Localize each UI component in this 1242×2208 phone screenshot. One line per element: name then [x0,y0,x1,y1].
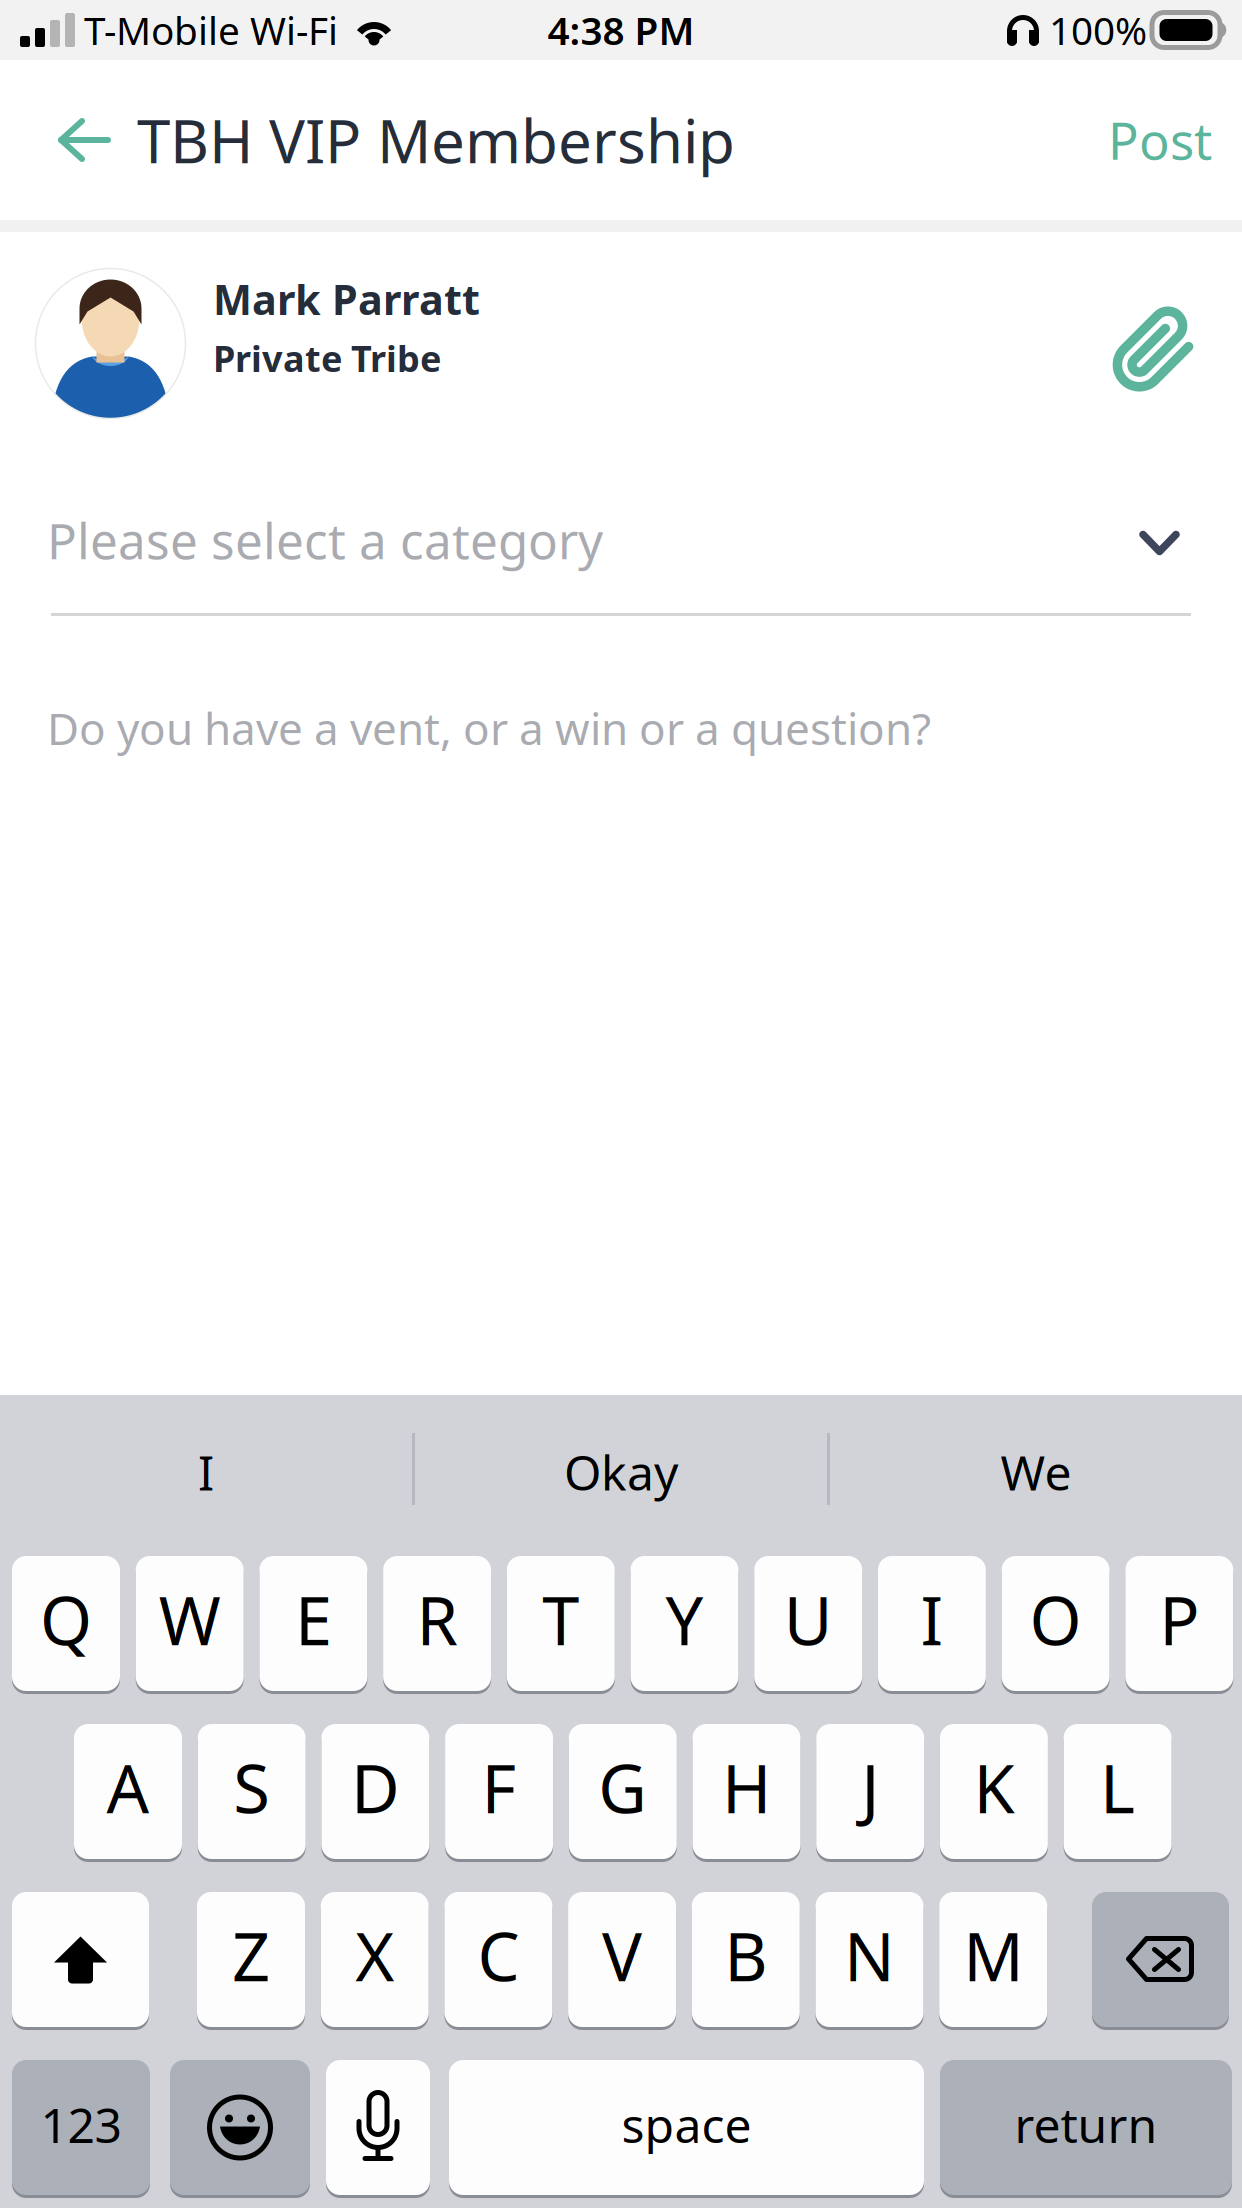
button[interactable]: F [445,1722,553,1861]
button[interactable]: K [940,1722,1048,1861]
button[interactable]: J [816,1722,924,1861]
button[interactable]: return [940,2058,1232,2197]
staticText: A [106,1743,149,1832]
staticText: V [602,1911,642,2000]
button[interactable]: Y [630,1554,738,1693]
staticText: D [351,1743,400,1832]
button[interactable]: Emoji [170,2058,310,2197]
button[interactable]: V [568,1890,676,2029]
button[interactable]: Post [1078,60,1242,220]
staticText: Y [665,1575,703,1664]
staticText: I [198,1440,214,1504]
button[interactable]: U [754,1554,862,1693]
staticText: U [784,1575,833,1664]
staticText: W [159,1575,221,1664]
button[interactable]: H [692,1722,800,1861]
staticText: Q [40,1575,92,1664]
staticText: Mark Parratt [213,272,480,326]
button[interactable]: Attach file [1101,297,1205,401]
button[interactable]: B [692,1890,800,2029]
staticText: Private Tribe [213,334,441,382]
button[interactable]: Dictate [326,2058,430,2197]
staticText: L [1100,1743,1135,1832]
button[interactable]: D [321,1722,429,1861]
staticText: F [482,1743,517,1832]
button[interactable]: We [830,1407,1242,1537]
button[interactable]: Okay [415,1407,827,1537]
staticText: Do you have a vent, or a win or a questi… [47,699,931,757]
staticText: T-Mobile Wi-Fi [84,4,338,56]
staticText: Z [232,1911,270,2000]
staticText: S [233,1743,270,1832]
staticText: O [1030,1575,1082,1664]
button[interactable]: Do you have a vent, or a win or a questi… [0,682,1242,1382]
staticText: space [621,2093,751,2156]
staticText: We [1000,1440,1071,1504]
staticText: I [920,1575,943,1664]
button[interactable]: P [1125,1554,1233,1693]
staticText: R [417,1575,458,1664]
button[interactable]: Z [197,1890,305,2029]
button[interactable]: A [74,1722,182,1861]
staticText: 123 [40,2093,121,2156]
staticText: M [963,1911,1023,2000]
staticText: G [598,1743,647,1832]
button[interactable]: N [815,1890,923,2029]
staticText: H [722,1743,771,1832]
button[interactable]: M [939,1890,1047,2029]
button[interactable]: X [321,1890,429,2029]
staticText: X [355,1911,394,2000]
staticText: K [973,1743,1014,1832]
button[interactable]: O [1002,1554,1110,1693]
button[interactable]: S [198,1722,306,1861]
button[interactable]: Q [12,1554,120,1693]
button[interactable]: W [136,1554,244,1693]
button[interactable]: T [507,1554,615,1693]
button[interactable]: G [569,1722,677,1861]
button[interactable]: space [449,2058,924,2197]
button[interactable]: Delete [1092,1890,1229,2029]
staticText: N [844,1911,895,2000]
staticText: B [724,1911,767,2000]
button[interactable]: Back [0,60,137,220]
button[interactable]: Please select a category [0,482,1242,598]
staticText: T [542,1575,579,1664]
button[interactable]: 123 [12,2058,150,2197]
button[interactable]: R [383,1554,491,1693]
staticText: J [861,1743,879,1832]
staticText: P [1159,1575,1199,1664]
button[interactable]: L [1064,1722,1172,1861]
staticText: TBH VIP Membership [137,100,735,180]
staticText: Okay [564,1440,678,1504]
button[interactable]: I [878,1554,986,1693]
button[interactable]: E [259,1554,367,1693]
button[interactable]: Shift [12,1890,149,2029]
staticText: Post [1108,106,1212,174]
staticText: Please select a category [47,507,603,573]
staticText: 4:38 PM [547,4,694,56]
staticText: C [477,1911,519,2000]
button[interactable]: C [444,1890,552,2029]
button[interactable]: I [0,1407,412,1537]
staticText: 100% [1049,4,1147,56]
staticText: E [295,1575,332,1664]
staticText: return [1014,2093,1157,2156]
